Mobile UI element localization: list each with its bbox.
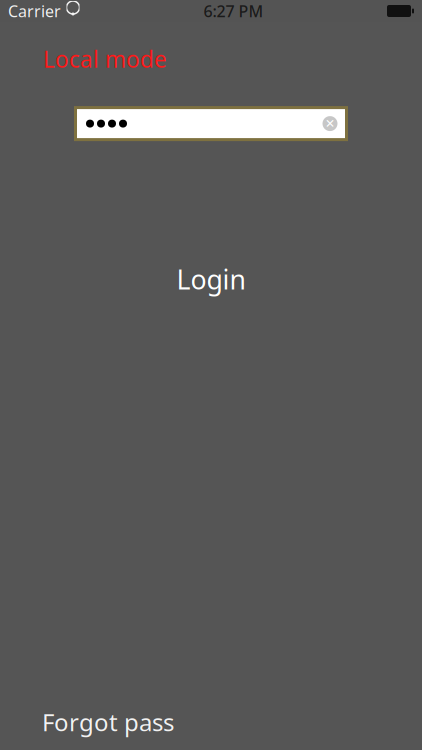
button[interactable]: Clear text — [319, 113, 341, 135]
staticText: Carrier — [8, 0, 61, 22]
staticText: Forgot pass — [42, 706, 174, 738]
staticText: 6:27 PM — [203, 0, 263, 22]
button[interactable]: Forgot pass — [42, 709, 174, 735]
staticText: Local mode — [43, 44, 167, 74]
staticText: Login — [176, 261, 245, 297]
button[interactable]: Login — [0, 264, 422, 294]
staticText: ✕ — [325, 117, 335, 130]
